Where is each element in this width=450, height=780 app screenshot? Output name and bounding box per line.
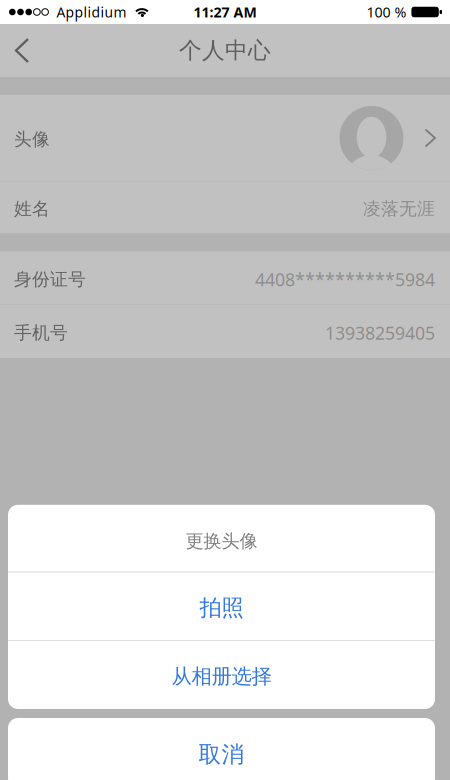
staticText: 个人中心: [179, 37, 271, 64]
staticText: 4408**********5984: [255, 268, 435, 291]
staticText: 100 %: [366, 2, 406, 21]
staticText: 身份证号: [14, 268, 86, 290]
staticText: 姓名: [14, 198, 50, 220]
staticText: 11:27 AM: [193, 3, 256, 21]
staticText: 拍照: [199, 594, 243, 621]
button[interactable]: Back: [0, 24, 44, 77]
staticText: 从相册选择: [171, 664, 271, 689]
button[interactable]: 取消: [8, 718, 435, 780]
button[interactable]: 头像: [0, 95, 450, 181]
button[interactable]: 更换头像: [8, 505, 435, 572]
staticText: 更换头像: [185, 530, 257, 552]
staticText: 取消: [198, 740, 244, 768]
staticText: 头像: [14, 128, 50, 150]
staticText: 13938259405: [325, 321, 435, 345]
button[interactable]: 从相册选择: [8, 641, 435, 709]
staticText: 手机号: [14, 322, 68, 344]
staticText: Applidium: [56, 3, 126, 21]
button[interactable]: 拍照: [8, 572, 435, 640]
staticText: 凌落无涯: [363, 198, 435, 220]
